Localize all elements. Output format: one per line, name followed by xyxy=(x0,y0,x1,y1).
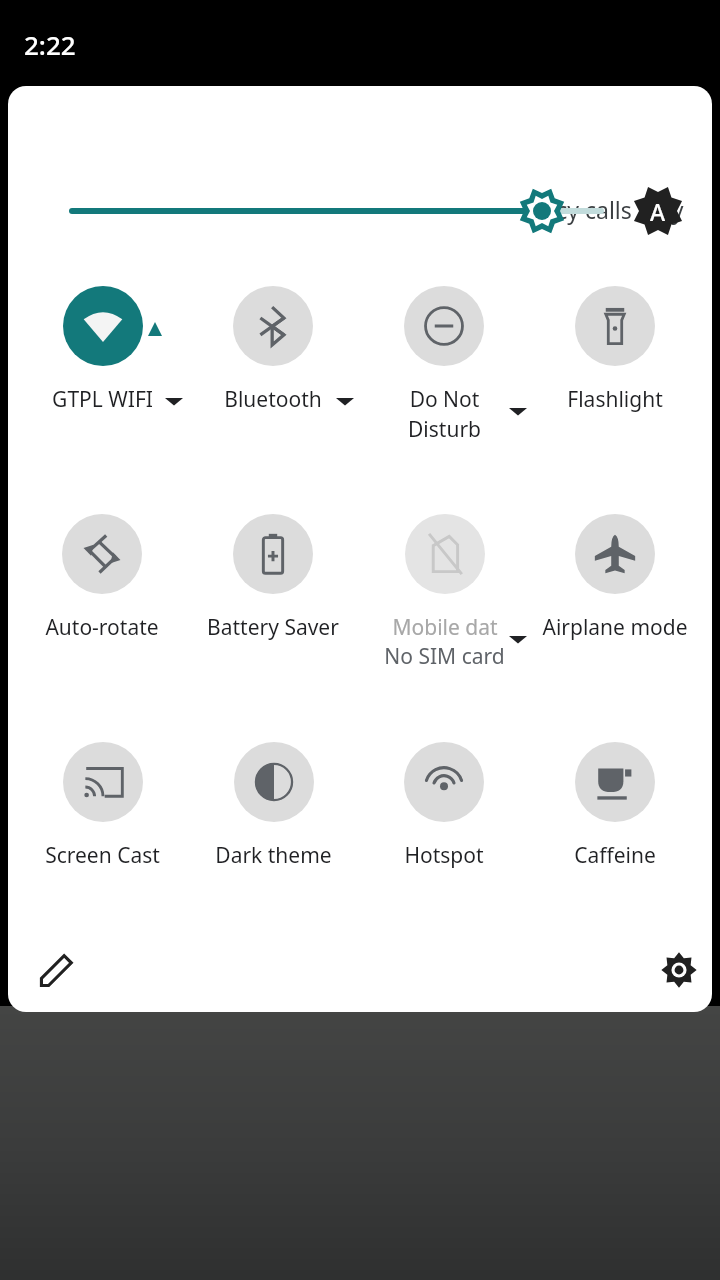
staticText: GTPL WIFI xyxy=(52,385,153,414)
button[interactable]: Flashlight xyxy=(530,286,700,496)
staticText: Airplane mode xyxy=(542,613,688,642)
staticText: Mobile dat xyxy=(392,613,498,642)
staticText: Auto-rotate xyxy=(45,613,159,642)
staticText: ency calls only xyxy=(529,194,684,225)
button[interactable]: Battery Saver xyxy=(188,514,358,724)
staticText: Hotspot xyxy=(404,841,484,870)
button[interactable]: Airplane mode xyxy=(530,514,700,724)
staticText: Flashlight xyxy=(567,385,663,414)
staticText: Dark theme xyxy=(215,841,332,870)
button[interactable]: Hotspot xyxy=(359,742,529,952)
staticText: Caffeine xyxy=(574,841,656,870)
button[interactable]: Mobile dat xyxy=(359,514,529,724)
button[interactable]: Dark theme xyxy=(188,742,358,952)
staticText: A xyxy=(650,196,666,227)
button[interactable]: Caffeine xyxy=(530,742,700,952)
staticText: Do Not Disturb xyxy=(408,385,481,443)
button[interactable]: Edit xyxy=(25,938,89,1002)
staticText: Bluetooth xyxy=(224,385,322,414)
staticText: 2:22 xyxy=(24,27,76,62)
button[interactable]: Auto-rotate xyxy=(17,514,187,724)
staticText: Battery Saver xyxy=(207,613,339,642)
button[interactable]: Bluetooth xyxy=(188,286,358,496)
staticText: No SIM card xyxy=(384,642,505,671)
button[interactable]: Brightness xyxy=(48,181,616,241)
button[interactable]: Screen Cast xyxy=(17,742,187,952)
button[interactable]: Auto brightness xyxy=(624,181,692,241)
button[interactable]: Settings xyxy=(647,938,711,1002)
staticText: Screen Cast xyxy=(45,841,160,870)
button[interactable]: GTPL WIFI xyxy=(17,286,187,496)
button[interactable]: Do Not Disturb xyxy=(359,286,529,496)
